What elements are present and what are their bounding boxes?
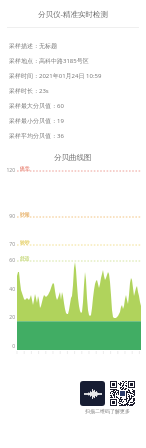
staticText: 分贝仪-精准实时检测 — [38, 9, 108, 19]
staticText: 采样时长：23s — [9, 87, 49, 95]
staticText: 采样最大分贝值：60 — [9, 102, 64, 110]
staticText: 40 — [9, 286, 15, 293]
staticText: 20 — [9, 314, 15, 321]
staticText: 120 — [6, 167, 15, 174]
staticText: 痛觉 — [20, 165, 30, 171]
staticText: 采样最小分贝值：19 — [9, 117, 64, 125]
staticText: 采样描述：无标题 — [9, 42, 57, 50]
staticText: 采样地点：高科中路3185号区 — [9, 57, 89, 65]
button[interactable]: QR code — [110, 381, 135, 406]
staticText: 70 — [9, 241, 15, 248]
staticText: 舒适 — [20, 255, 30, 261]
staticText: 60 — [9, 257, 15, 264]
staticText: 90 — [9, 213, 15, 220]
staticText: 采样时间：2021年01月24日 10:59 — [9, 72, 102, 80]
button[interactable]: App icon — [80, 381, 105, 406]
staticText: 扫描二维码了解更多 — [85, 408, 130, 414]
staticText: 分贝曲线图 — [54, 153, 92, 162]
staticText: 0 — [12, 343, 15, 350]
staticText: 采样平均分贝值：36 — [9, 132, 64, 140]
staticText: 较吵 — [20, 239, 30, 245]
staticText: 吵闹 — [20, 211, 30, 217]
